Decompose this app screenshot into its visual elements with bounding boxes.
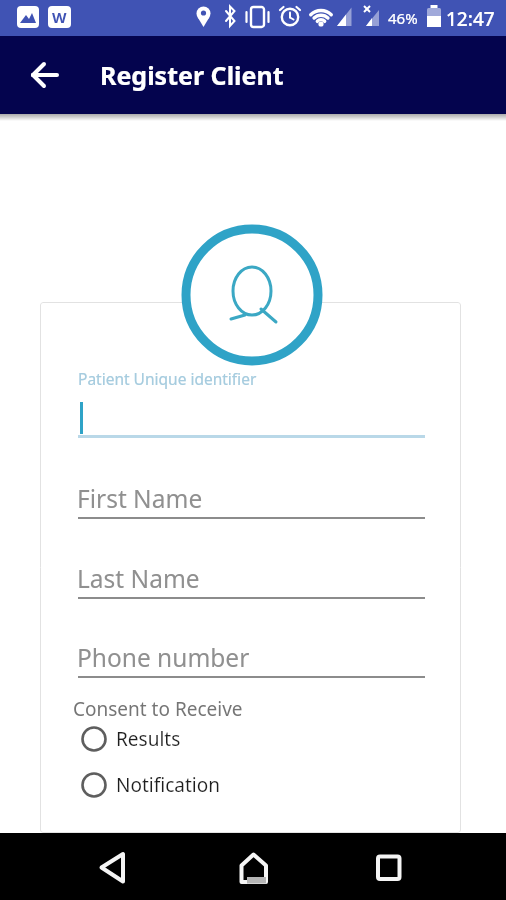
button[interactable]: First Name [77,480,425,519]
staticText: Notification [116,772,220,798]
button[interactable]: Results [80,725,181,753]
button[interactable]: Phone number [77,639,425,678]
button[interactable]: Last Name [77,560,425,599]
button[interactable] [0,833,168,900]
staticText: First Name [77,482,203,515]
button[interactable]: Patient Unique identifier [78,365,425,438]
button[interactable] [168,833,337,900]
staticText: Patient Unique identifier [78,368,257,389]
button[interactable] [337,833,506,900]
staticText: 46% [388,8,418,28]
button[interactable]: Notification [80,771,220,799]
button[interactable] [181,224,323,366]
staticText: Consent to Receive [73,696,243,722]
staticText: Register Client [100,58,284,92]
staticText: 12:47 [446,6,495,32]
staticText: W [52,7,67,27]
staticText: Last Name [77,562,200,595]
button[interactable] [21,51,69,99]
staticText: Phone number [77,641,250,674]
staticText: Results [116,726,181,752]
